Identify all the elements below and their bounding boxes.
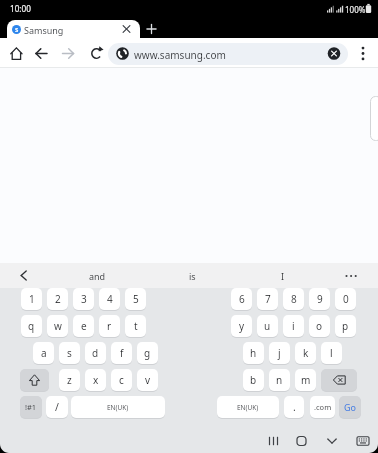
button[interactable]: I: [253, 263, 313, 288]
button[interactable]: t: [125, 315, 146, 337]
staticText: 7: [265, 292, 271, 306]
button[interactable]: EN(UK): [71, 396, 165, 418]
button[interactable]: r: [99, 315, 120, 337]
staticText: .: [293, 400, 296, 414]
staticText: 8: [291, 292, 297, 306]
staticText: 9: [317, 292, 323, 306]
button[interactable]: [6, 43, 27, 64]
staticText: 10:00: [10, 3, 31, 14]
staticText: j: [278, 346, 281, 360]
button[interactable]: 3: [73, 288, 94, 310]
staticText: x: [93, 373, 99, 387]
staticText: S: [15, 26, 19, 34]
button[interactable]: x: [85, 369, 106, 391]
button[interactable]: [352, 428, 376, 452]
staticText: h: [250, 346, 257, 360]
button[interactable]: e: [73, 315, 94, 337]
button[interactable]: [118, 21, 135, 37]
button[interactable]: z: [59, 369, 80, 391]
button[interactable]: h: [243, 342, 264, 364]
button[interactable]: [340, 263, 365, 288]
button[interactable]: v: [137, 369, 158, 391]
button[interactable]: d: [85, 342, 106, 364]
button[interactable]: [262, 428, 286, 452]
button[interactable]: s: [59, 342, 80, 364]
staticText: 5: [133, 292, 139, 306]
staticText: u: [264, 319, 271, 333]
button[interactable]: [321, 369, 357, 391]
button[interactable]: j: [269, 342, 290, 364]
button[interactable]: f: [111, 342, 132, 364]
staticText: e: [81, 319, 87, 333]
staticText: m: [301, 373, 311, 387]
button[interactable]: u: [257, 315, 278, 337]
button[interactable]: m: [295, 369, 316, 391]
button[interactable]: q: [21, 315, 42, 337]
staticText: o: [316, 319, 323, 333]
staticText: v: [145, 373, 151, 387]
staticText: q: [28, 319, 35, 333]
button[interactable]: g: [137, 342, 158, 364]
button[interactable]: [320, 428, 344, 452]
button[interactable]: o: [309, 315, 330, 337]
button[interactable]: 1: [21, 288, 42, 310]
button[interactable]: [355, 43, 371, 64]
staticText: w: [54, 319, 62, 333]
button[interactable]: k: [295, 342, 316, 364]
staticText: r: [107, 319, 112, 333]
button[interactable]: [58, 43, 79, 64]
staticText: 6: [239, 292, 245, 306]
button[interactable]: .com: [310, 396, 335, 418]
button[interactable]: Go: [339, 396, 361, 418]
button[interactable]: n: [269, 369, 290, 391]
button[interactable]: [86, 43, 107, 64]
button[interactable]: w: [47, 315, 68, 337]
button[interactable]: and: [67, 263, 127, 288]
button[interactable]: l: [321, 342, 342, 364]
staticText: is: [189, 270, 196, 282]
button[interactable]: [31, 43, 52, 64]
button[interactable]: !#1: [20, 396, 42, 418]
button[interactable]: .: [284, 396, 304, 418]
staticText: /: [55, 400, 59, 414]
staticText: I: [281, 270, 285, 282]
button[interactable]: b: [243, 369, 264, 391]
staticText: t: [134, 319, 138, 333]
staticText: g: [144, 346, 151, 360]
button[interactable]: i: [283, 315, 304, 337]
button[interactable]: [290, 428, 314, 452]
button[interactable]: is: [162, 263, 222, 288]
staticText: k: [303, 346, 309, 360]
staticText: d: [92, 346, 99, 360]
button[interactable]: EN(UK): [217, 396, 279, 418]
button[interactable]: [143, 21, 160, 37]
staticText: z: [67, 373, 72, 387]
staticText: s: [67, 346, 72, 360]
staticText: .com: [314, 402, 332, 412]
button[interactable]: 6: [231, 288, 252, 310]
button[interactable]: 5: [125, 288, 146, 310]
button[interactable]: 4: [99, 288, 120, 310]
staticText: 0: [343, 292, 349, 306]
staticText: n: [276, 373, 283, 387]
button[interactable]: 8: [283, 288, 304, 310]
button[interactable]: [7, 20, 140, 38]
button[interactable]: c: [111, 369, 132, 391]
button[interactable]: 7: [257, 288, 278, 310]
button[interactable]: [12, 263, 35, 288]
staticText: !#1: [25, 402, 37, 412]
button[interactable]: [20, 369, 49, 391]
button[interactable]: /: [46, 396, 68, 418]
button[interactable]: 0: [335, 288, 356, 310]
staticText: l: [330, 346, 333, 360]
staticText: 1: [29, 292, 35, 306]
button[interactable]: 9: [309, 288, 330, 310]
button[interactable]: a: [33, 342, 54, 364]
button[interactable]: 2: [47, 288, 68, 310]
button[interactable]: p: [335, 315, 356, 337]
staticText: EN(UK): [237, 403, 259, 412]
button[interactable]: [327, 46, 341, 60]
button[interactable]: y: [231, 315, 252, 337]
button[interactable]: [108, 43, 348, 65]
staticText: 4: [107, 292, 113, 306]
